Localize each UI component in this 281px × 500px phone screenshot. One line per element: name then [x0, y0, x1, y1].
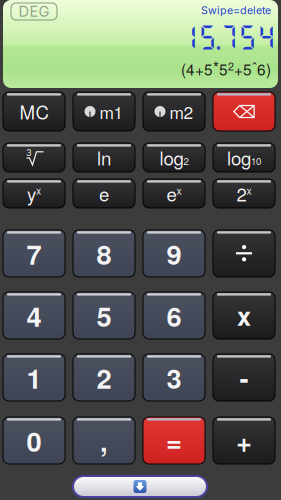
staticText: +5 — [234, 58, 252, 80]
staticText: 6 — [166, 296, 181, 335]
button[interactable]: Hide keyboard — [73, 476, 207, 497]
staticText: ln — [97, 144, 111, 171]
staticText: x — [176, 183, 181, 198]
button[interactable]: 7 — [3, 230, 65, 277]
button[interactable]: DEG — [11, 3, 57, 20]
button[interactable]: 2 to the x — [213, 179, 275, 208]
staticText: 4 — [26, 296, 41, 335]
button[interactable]: Multiply — [213, 292, 275, 339]
button[interactable]: e to the x — [143, 179, 205, 208]
button[interactable]: log base 2 — [143, 143, 205, 172]
button[interactable]: Plus — [213, 417, 275, 464]
staticText: m1 — [99, 99, 123, 124]
staticText: 7 — [26, 234, 41, 273]
staticText: log — [159, 144, 183, 171]
staticText: y — [27, 180, 36, 207]
staticText: e — [99, 180, 109, 207]
staticText: 8 — [96, 234, 111, 273]
button[interactable]: Minus — [213, 354, 275, 401]
staticText: = — [166, 421, 182, 460]
staticText: * — [213, 56, 219, 78]
staticText: 2 — [96, 358, 111, 397]
button[interactable]: 4 — [3, 292, 65, 339]
button[interactable]: 2 — [73, 354, 135, 401]
staticText: 5 — [96, 296, 111, 335]
staticText: 6) — [257, 58, 271, 80]
staticText: 2 — [236, 180, 246, 207]
button[interactable]: m1 — [73, 92, 135, 131]
button[interactable]: Delete — [213, 92, 275, 131]
staticText: 0 — [26, 421, 41, 460]
button[interactable]: 0 — [3, 417, 65, 464]
button[interactable]: = — [143, 417, 205, 464]
staticText: 5 — [219, 58, 228, 80]
staticText: m2 — [169, 99, 193, 124]
button[interactable]: 3 — [143, 354, 205, 401]
button[interactable]: m2 — [143, 92, 205, 131]
staticText: 15.754 — [179, 21, 276, 52]
staticText: , — [100, 421, 108, 460]
staticText: (4+5 — [181, 58, 213, 80]
staticText: log — [227, 144, 251, 171]
staticText: 10 — [251, 154, 261, 168]
staticText: 3 — [26, 147, 32, 158]
button[interactable]: e — [73, 179, 135, 208]
staticText: x — [36, 183, 41, 198]
staticText: e — [166, 180, 176, 207]
staticText: DEG — [18, 3, 49, 20]
button[interactable]: 8 — [73, 230, 135, 277]
staticText: 2 — [228, 58, 234, 74]
staticText: 1 — [26, 358, 41, 397]
button[interactable]: 1 — [3, 354, 65, 401]
button[interactable]: Cube root — [3, 143, 65, 172]
button[interactable]: Divide — [213, 230, 275, 277]
staticText: - — [239, 358, 248, 397]
button[interactable]: log base 10 — [213, 143, 275, 172]
staticText: 9 — [166, 234, 181, 273]
button[interactable]: 6 — [143, 292, 205, 339]
button[interactable]: 5 — [73, 292, 135, 339]
button[interactable]: , — [73, 417, 135, 464]
staticText: 2 — [183, 154, 188, 168]
button[interactable]: 9 — [143, 230, 205, 277]
button[interactable]: ln — [73, 143, 135, 172]
staticText: MC — [19, 98, 48, 125]
staticText: 3 — [166, 358, 181, 397]
staticText: x — [237, 297, 251, 334]
staticText: Swipe=delete — [201, 4, 271, 17]
button[interactable]: MC — [3, 92, 65, 131]
button[interactable]: y to the x — [3, 179, 65, 208]
staticText: + — [236, 421, 252, 460]
staticText: ˆ — [252, 57, 257, 79]
staticText: x — [246, 183, 251, 198]
